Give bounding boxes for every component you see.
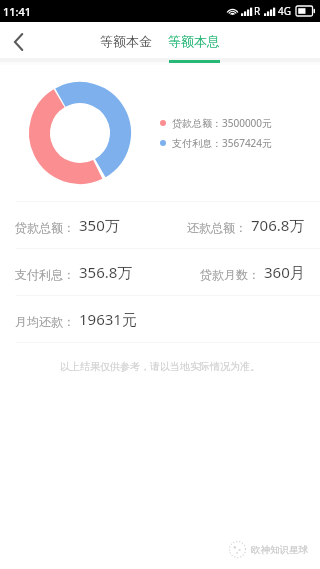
staticText: 11:41 [3,4,32,19]
staticText: R [254,4,261,18]
staticText: 贷款总额：3500000元 [172,116,273,130]
staticText: 贷款总额： [15,220,75,235]
staticText: 还款总额： [187,220,247,235]
staticText: 360月 [264,262,305,282]
staticText: 月均还款： [15,314,75,329]
staticText: 356.8万 [79,262,133,282]
staticText: 706.8万 [251,215,305,235]
button[interactable]: 等额本息 [168,33,220,63]
button[interactable]: 等额本金 [100,33,152,63]
staticText: 等额本金 [100,33,152,49]
staticText: 等额本息 [168,33,220,49]
staticText: 350万 [79,215,120,235]
staticText: 以上结果仅供参考，请以当地实际情况为准。 [0,360,320,373]
button[interactable]: 月均还款： [0,296,320,342]
staticText: 19631元 [79,309,137,329]
staticText: 贷款月数： [200,267,260,282]
staticText: 4G [278,4,291,18]
staticText: 支付利息：3567424元 [172,136,273,150]
button[interactable]: 支付利息： [0,249,320,295]
staticText: 欧神知识星球 [251,544,308,556]
button[interactable]: 贷款总额： [0,202,320,248]
staticText: 支付利息： [15,267,75,282]
button[interactable]: Back [1,25,35,59]
